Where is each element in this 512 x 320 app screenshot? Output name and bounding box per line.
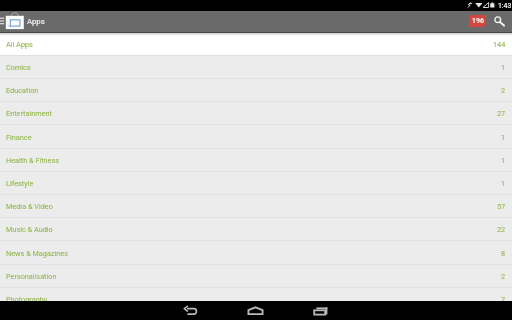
staticText: 22 xyxy=(497,225,506,234)
staticText: 1 xyxy=(501,156,506,165)
staticText: Finance xyxy=(6,133,32,142)
staticText: Apps xyxy=(27,17,45,26)
button[interactable]: Search xyxy=(489,11,508,33)
staticText: Media & Video xyxy=(6,202,53,211)
staticText: 2 xyxy=(501,86,506,95)
staticText: 57 xyxy=(497,202,506,211)
staticText: News & Magazines xyxy=(6,249,68,258)
staticText: 2 xyxy=(501,272,506,281)
staticText: Lifestyle xyxy=(6,179,34,188)
button[interactable]: Lifestyle xyxy=(0,172,512,195)
staticText: Photography xyxy=(6,295,48,304)
staticText: Health & Fitness xyxy=(6,156,60,165)
button[interactable]: Music & Audio xyxy=(0,218,512,241)
staticText: 8 xyxy=(501,249,506,258)
button[interactable]: Recent apps xyxy=(303,301,339,320)
button[interactable]: Open navigation drawer xyxy=(0,11,26,33)
button[interactable]: Back xyxy=(173,301,209,320)
button[interactable]: Personalisation xyxy=(0,265,512,288)
staticText: 1 xyxy=(501,133,506,142)
button[interactable]: Finance xyxy=(0,125,512,149)
button[interactable]: Media & Video xyxy=(0,195,512,218)
button[interactable]: All Apps xyxy=(0,33,512,56)
staticText: Entertainment xyxy=(6,109,52,118)
staticText: 144 xyxy=(493,40,506,49)
staticText: 1 xyxy=(501,63,506,72)
staticText: 1 xyxy=(501,179,506,188)
button[interactable]: News & Magazines xyxy=(0,241,512,265)
button[interactable]: Comics xyxy=(0,56,512,79)
staticText: Education xyxy=(6,86,39,95)
button[interactable]: Health & Fitness xyxy=(0,149,512,172)
staticText: Comics xyxy=(6,63,31,72)
staticText: 27 xyxy=(497,109,506,118)
button[interactable]: Education xyxy=(0,79,512,102)
staticText: 196 xyxy=(472,17,484,25)
staticText: 7 xyxy=(501,295,506,304)
button[interactable]: Photography xyxy=(0,288,512,311)
button[interactable]: 196 xyxy=(469,15,486,27)
staticText: 1:43 xyxy=(498,2,512,10)
staticText: Personalisation xyxy=(6,272,57,281)
button[interactable]: Home xyxy=(238,301,274,320)
staticText: All Apps xyxy=(6,40,33,49)
staticText: Music & Audio xyxy=(6,225,53,234)
button[interactable]: Entertainment xyxy=(0,102,512,125)
